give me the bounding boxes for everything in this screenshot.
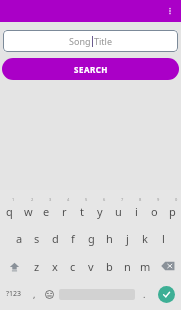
staticText: 4 xyxy=(67,197,70,202)
button[interactable]: ?123 xyxy=(0,280,27,308)
button[interactable]: SEARCH xyxy=(2,58,179,80)
staticText: 0 xyxy=(175,197,178,202)
staticText: x xyxy=(52,259,58,274)
button[interactable]: 5 xyxy=(73,196,91,224)
staticText: q xyxy=(6,204,13,219)
button[interactable]: d xyxy=(46,224,64,252)
button[interactable]: 6 xyxy=(91,196,109,224)
staticText: ?123 xyxy=(6,289,22,299)
staticText: d xyxy=(52,231,59,246)
button[interactable]: k xyxy=(136,224,154,252)
staticText: c xyxy=(70,259,76,274)
button[interactable]: , xyxy=(27,280,41,308)
staticText: SEARCH xyxy=(74,64,108,75)
staticText: 9 xyxy=(157,197,160,202)
staticText: u xyxy=(115,204,122,219)
button[interactable]: 8 xyxy=(127,196,145,224)
button[interactable]: 9 xyxy=(145,196,163,224)
staticText: n xyxy=(124,259,131,274)
button[interactable]: m xyxy=(136,252,154,280)
staticText: 6 xyxy=(103,197,106,202)
staticText: v xyxy=(88,259,94,274)
staticText: f xyxy=(71,231,75,246)
staticText: 3 xyxy=(49,197,52,202)
button[interactable]: f xyxy=(64,224,82,252)
staticText: 1 xyxy=(12,197,15,202)
button[interactable]: 2 xyxy=(19,196,37,224)
staticText: Song xyxy=(69,35,91,47)
button[interactable]: Emoji xyxy=(41,280,57,308)
staticText: a xyxy=(16,231,23,246)
button[interactable]: Song xyxy=(3,30,178,52)
staticText: b xyxy=(106,259,113,274)
staticText: i xyxy=(135,204,138,219)
staticText: e xyxy=(43,204,50,219)
button[interactable]: More options xyxy=(159,0,181,22)
button[interactable]: Shift xyxy=(0,252,28,280)
button[interactable]: b xyxy=(100,252,118,280)
button[interactable]: a xyxy=(10,224,28,252)
staticText: p xyxy=(169,204,176,219)
staticText: , xyxy=(33,288,36,300)
button[interactable]: n xyxy=(118,252,136,280)
staticText: s xyxy=(34,231,40,246)
button[interactable]: l xyxy=(154,224,172,252)
staticText: l xyxy=(162,231,165,246)
button[interactable]: 3 xyxy=(37,196,55,224)
staticText: y xyxy=(97,204,103,219)
button[interactable]: 0 xyxy=(163,196,181,224)
button[interactable]: 7 xyxy=(109,196,127,224)
staticText: k xyxy=(142,231,148,246)
staticText: h xyxy=(106,231,113,246)
staticText: . xyxy=(143,288,146,300)
staticText: g xyxy=(88,231,95,246)
staticText: t xyxy=(80,204,84,219)
button[interactable]: Backspace xyxy=(154,252,181,280)
button[interactable]: x xyxy=(46,252,64,280)
staticText: 5 xyxy=(85,197,88,202)
button[interactable]: h xyxy=(100,224,118,252)
button[interactable]: s xyxy=(28,224,46,252)
button[interactable]: . xyxy=(137,280,151,308)
button[interactable]: 1 xyxy=(0,196,19,224)
staticText: w xyxy=(24,204,33,219)
staticText: 2 xyxy=(31,197,34,202)
button[interactable]: g xyxy=(82,224,100,252)
staticText: 8 xyxy=(139,197,142,202)
button[interactable]: v xyxy=(82,252,100,280)
button[interactable]: c xyxy=(64,252,82,280)
button[interactable]: j xyxy=(118,224,136,252)
staticText: Title xyxy=(94,35,112,47)
staticText: m xyxy=(140,259,151,274)
button[interactable]: z xyxy=(28,252,46,280)
button[interactable]: 4 xyxy=(55,196,73,224)
staticText: z xyxy=(34,259,40,274)
staticText: o xyxy=(151,204,158,219)
staticText: j xyxy=(126,231,129,246)
button[interactable]: Done xyxy=(158,286,175,303)
staticText: 7 xyxy=(121,197,124,202)
staticText: r xyxy=(62,204,67,219)
